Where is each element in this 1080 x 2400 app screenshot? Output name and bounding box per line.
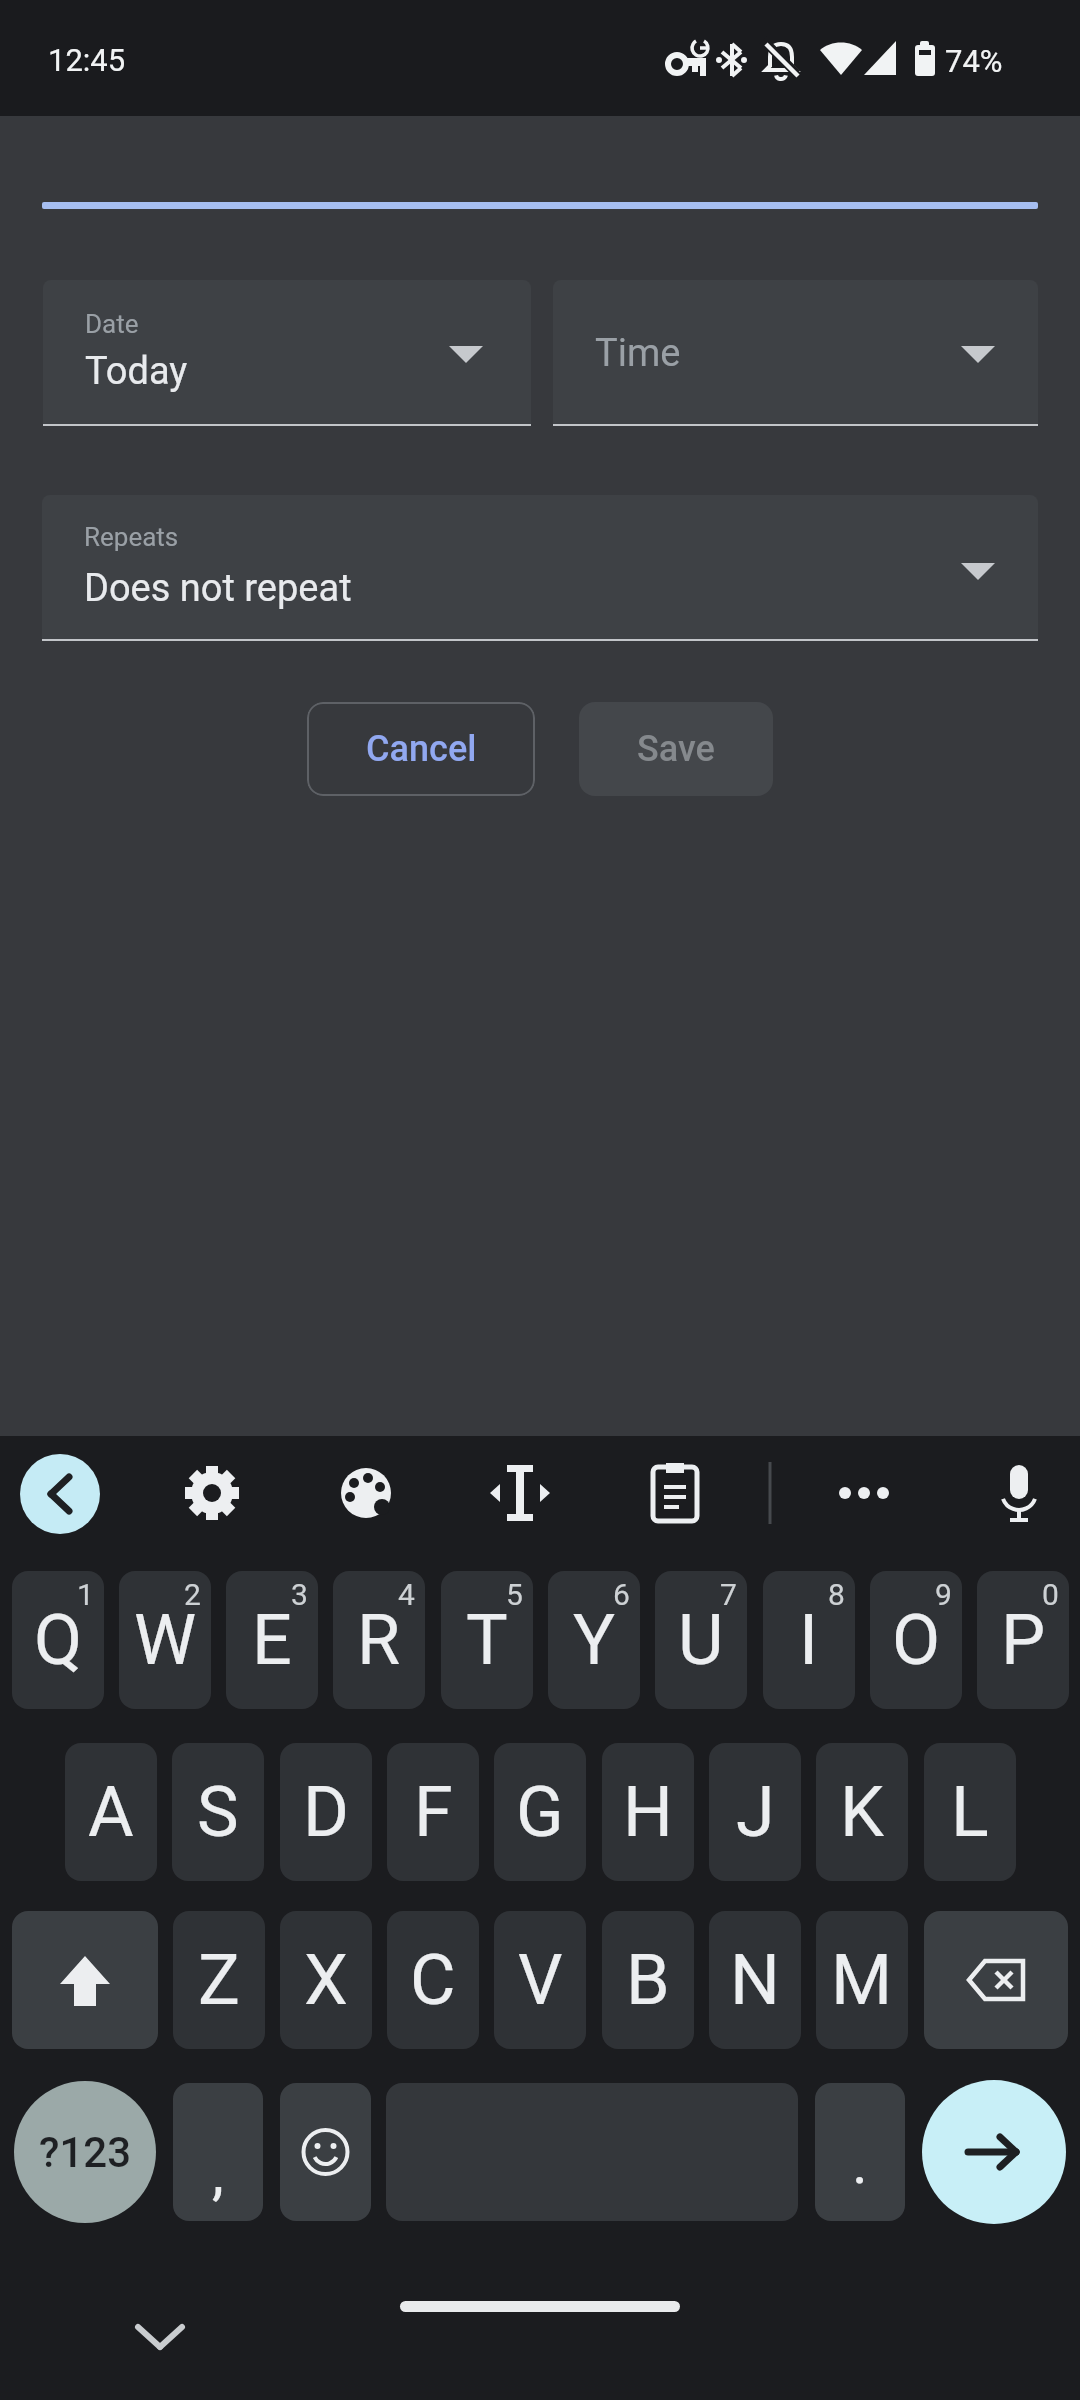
button[interactable]: V (494, 1911, 586, 2049)
button[interactable] (820, 1449, 908, 1537)
button[interactable]: W (119, 1571, 211, 1709)
staticText: K (840, 1771, 884, 1853)
button[interactable]: Z (173, 1911, 265, 2049)
button[interactable]: R (333, 1571, 425, 1709)
button[interactable]: Date (43, 280, 531, 426)
button[interactable]: E (226, 1571, 318, 1709)
staticText: B (626, 1939, 670, 2021)
button[interactable] (924, 1911, 1068, 2049)
button[interactable] (20, 1454, 100, 1534)
button[interactable]: X (280, 1911, 372, 2049)
button[interactable] (280, 2083, 371, 2221)
button[interactable] (322, 1449, 410, 1537)
staticText: Does not repeat (84, 566, 352, 611)
staticText: A (88, 1771, 134, 1853)
staticText: D (303, 1771, 349, 1853)
staticText: 4 (398, 1577, 415, 1612)
staticText: S (197, 1771, 239, 1853)
staticText: Repeats (84, 522, 179, 552)
staticText: 6 (613, 1577, 630, 1612)
staticText: J (736, 1771, 775, 1853)
staticText: C (410, 1939, 456, 2021)
staticText: L (951, 1771, 989, 1853)
staticText: Time (595, 331, 681, 376)
button[interactable]: F (387, 1743, 479, 1881)
button[interactable]: J (709, 1743, 801, 1881)
staticText: P (1001, 1599, 1046, 1681)
staticText: E (252, 1599, 292, 1681)
staticText: Today (85, 349, 188, 394)
staticText: I (799, 1599, 819, 1681)
button[interactable]: Cancel (307, 702, 535, 796)
staticText: 2 (184, 1577, 201, 1612)
button[interactable] (922, 2080, 1066, 2224)
button[interactable] (975, 1449, 1063, 1537)
button[interactable]: Repeats (42, 495, 1038, 641)
button[interactable]: C (387, 1911, 479, 2049)
staticText: Z (198, 1939, 240, 2021)
button[interactable]: N (709, 1911, 801, 2049)
staticText: Date (85, 309, 139, 339)
button[interactable]: A (65, 1743, 157, 1881)
staticText: ?123 (39, 2128, 132, 2177)
staticText: R (357, 1599, 401, 1681)
staticText: X (304, 1939, 348, 2021)
staticText: Q (34, 1599, 83, 1681)
staticText: T (466, 1599, 508, 1681)
button[interactable]: H (602, 1743, 694, 1881)
button[interactable]: G (494, 1743, 586, 1881)
button[interactable]: P (977, 1571, 1069, 1709)
staticText: . (852, 2127, 868, 2197)
button[interactable] (476, 1449, 564, 1537)
staticText: 0 (1042, 1577, 1059, 1612)
staticText: W (134, 1599, 197, 1681)
button[interactable] (116, 2293, 204, 2381)
staticText: Y (573, 1599, 616, 1681)
staticText: 1 (77, 1577, 94, 1612)
button[interactable]: Save (579, 702, 773, 796)
button[interactable]: B (602, 1911, 694, 2049)
button[interactable]: U (655, 1571, 747, 1709)
staticText: H (623, 1771, 673, 1853)
staticText: 7 (720, 1577, 737, 1612)
button[interactable]: ?123 (14, 2081, 156, 2223)
staticText: U (678, 1599, 724, 1681)
button[interactable] (631, 1449, 719, 1537)
button[interactable]: O (870, 1571, 962, 1709)
staticText: Save (637, 728, 715, 770)
staticText: G (516, 1771, 564, 1853)
staticText: Cancel (366, 728, 477, 770)
button[interactable]: D (280, 1743, 372, 1881)
button[interactable]: I (763, 1571, 855, 1709)
button[interactable] (168, 1449, 256, 1537)
button[interactable]: S (172, 1743, 264, 1881)
staticText: 9 (935, 1577, 952, 1612)
staticText: M (831, 1939, 893, 2021)
button[interactable]: K (816, 1743, 908, 1881)
button[interactable]: , (173, 2083, 263, 2221)
staticText: 12:45 (48, 42, 126, 78)
button[interactable]: Y (548, 1571, 640, 1709)
staticText: N (730, 1939, 780, 2021)
button[interactable]: . (815, 2083, 905, 2221)
button[interactable]: T (441, 1571, 533, 1709)
staticText: 5 (506, 1577, 523, 1612)
staticText: O (892, 1599, 941, 1681)
button[interactable] (12, 1911, 158, 2049)
staticText: F (414, 1771, 453, 1853)
staticText: 3 (291, 1577, 308, 1612)
button[interactable]: Time (553, 280, 1038, 426)
staticText: , (212, 2137, 224, 2207)
button[interactable]: M (816, 1911, 908, 2049)
button[interactable]: Q (12, 1571, 104, 1709)
staticText: 74% (945, 43, 1003, 79)
button[interactable]: L (924, 1743, 1016, 1881)
staticText: 8 (828, 1577, 845, 1612)
staticText: V (518, 1939, 563, 2021)
